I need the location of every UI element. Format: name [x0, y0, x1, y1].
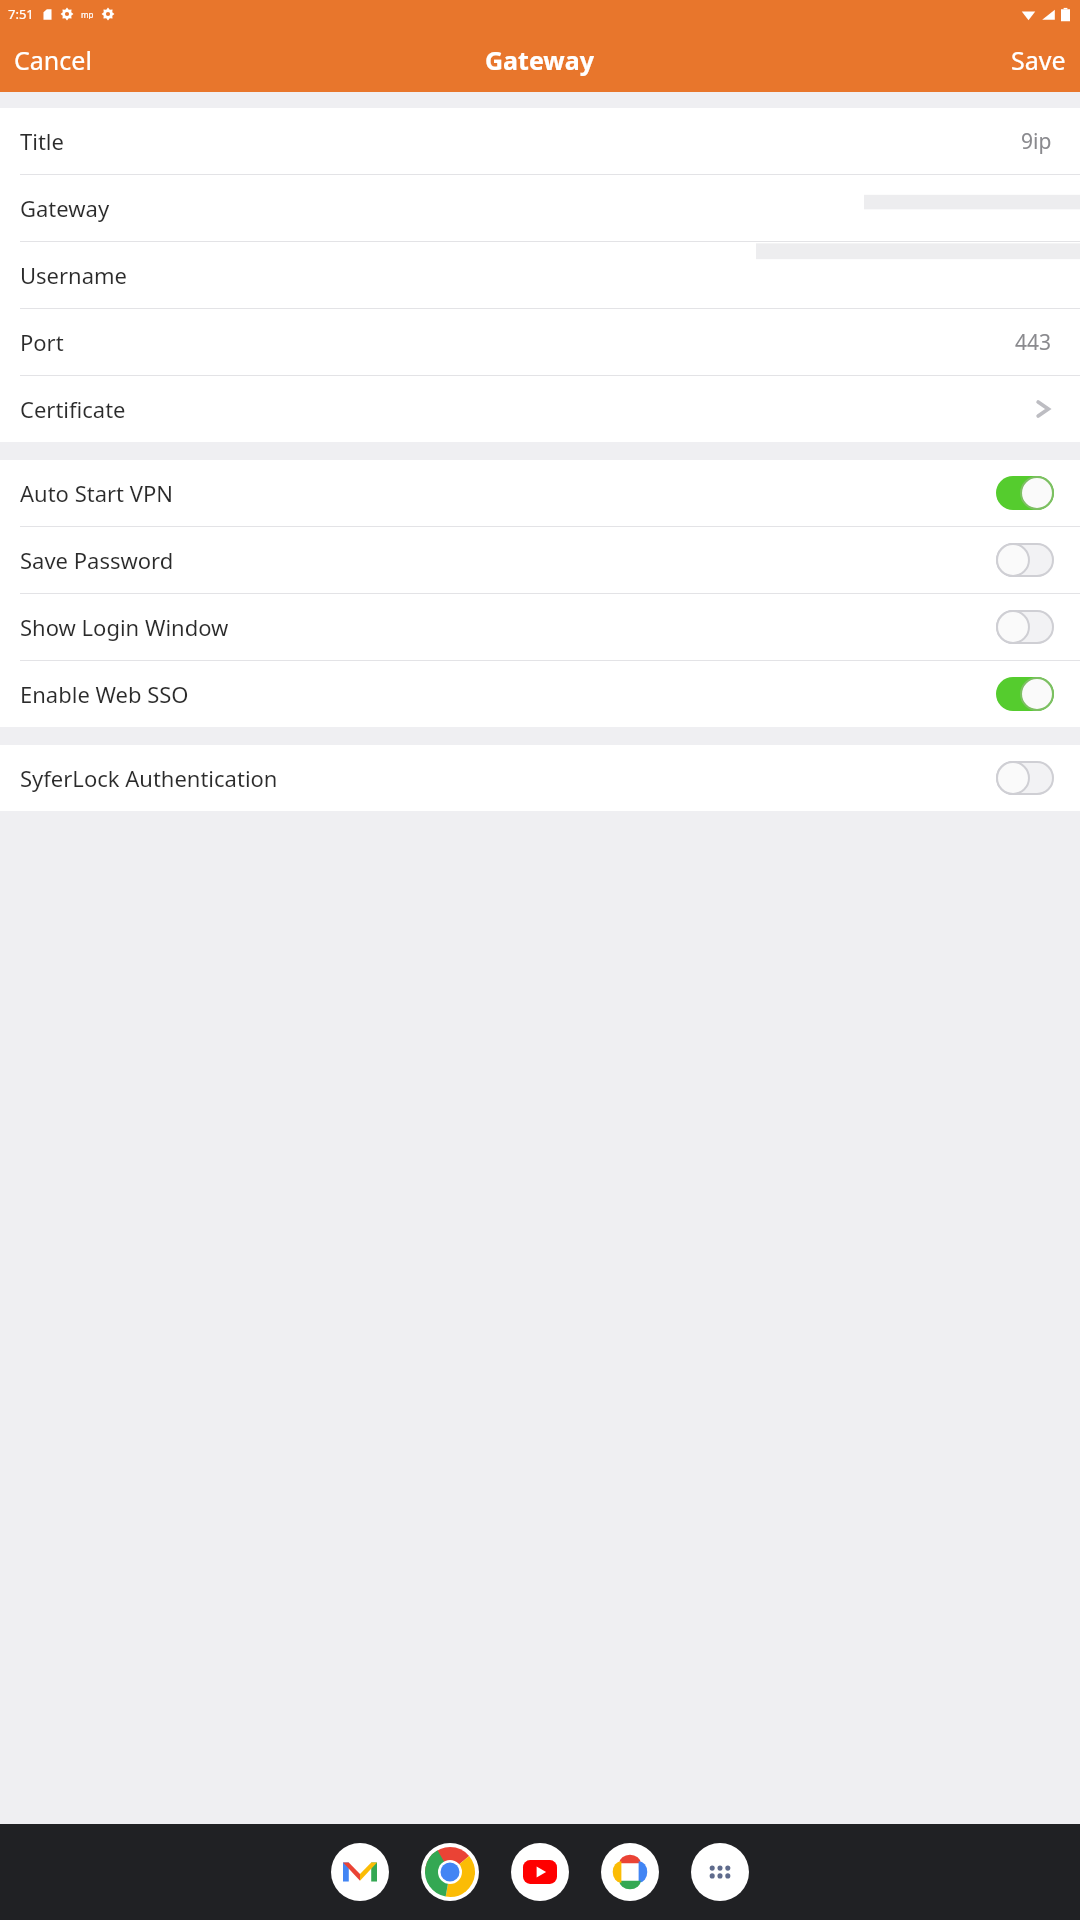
button[interactable]: Title: [0, 108, 1080, 175]
staticText: 9ip: [1021, 127, 1052, 156]
other: On: [996, 677, 1054, 711]
button[interactable]: Username: [0, 242, 1080, 309]
staticText: 7:51: [8, 5, 34, 23]
staticText: Enable Web SSO: [20, 679, 189, 709]
staticText: Title: [20, 126, 64, 156]
button[interactable]: Gmail: [331, 1843, 389, 1901]
staticText: Save Password: [20, 545, 174, 575]
staticText: Port: [20, 327, 64, 357]
button[interactable]: Port: [0, 309, 1080, 376]
staticText: Cancel: [14, 43, 92, 77]
staticText: Auto Start VPN: [20, 478, 173, 508]
other: Off: [996, 761, 1054, 795]
staticText: Show Login Window: [20, 612, 229, 642]
staticText: Gateway: [485, 43, 595, 77]
other: Off: [996, 543, 1054, 577]
button[interactable]: Save: [997, 33, 1080, 87]
button[interactable]: Gateway: [0, 175, 1080, 242]
button[interactable]: SyferLock Authentication: [0, 745, 1080, 811]
button[interactable]: Show Login Window: [0, 594, 1080, 661]
button[interactable]: Auto Start VPN: [0, 460, 1080, 527]
staticText: Certificate: [20, 394, 126, 424]
staticText: SyferLock Authentication: [20, 763, 278, 793]
staticText: mp: [81, 9, 94, 19]
other: On: [996, 476, 1054, 510]
staticText: Save: [1011, 43, 1066, 77]
button[interactable]: Enable Web SSO: [0, 661, 1080, 727]
other: Off: [996, 610, 1054, 644]
button[interactable]: Chrome: [421, 1843, 479, 1901]
staticText: Gateway: [20, 193, 110, 223]
button[interactable]: YouTube: [511, 1843, 569, 1901]
staticText: 443: [1015, 328, 1052, 357]
button[interactable]: Photos: [601, 1843, 659, 1901]
button[interactable]: Save Password: [0, 527, 1080, 594]
button[interactable]: Certificate: [0, 376, 1080, 442]
button[interactable]: All apps: [691, 1843, 749, 1901]
button[interactable]: Cancel: [0, 33, 106, 87]
staticText: Username: [20, 260, 128, 290]
